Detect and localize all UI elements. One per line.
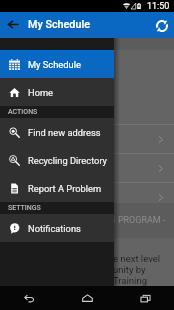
button[interactable]: [0, 125, 174, 153]
button[interactable]: [0, 154, 174, 182]
button[interactable]: Back: [0, 286, 58, 310]
staticText: SETTINGS: [8, 204, 41, 212]
staticText: ACTIONS: [8, 108, 38, 116]
button[interactable]: Back: [0, 11, 26, 37]
staticText: TRAINING PROGRAM -: [75, 215, 166, 226]
staticText: My Schedule: [28, 59, 81, 70]
staticText: Report A Problem: [28, 183, 102, 194]
button[interactable]: Report A Problem: [0, 174, 114, 202]
button[interactable]: Recent apps: [116, 286, 174, 310]
staticText: Recycling Directory: [28, 155, 108, 166]
staticText: Notifications: [28, 223, 81, 234]
button[interactable]: Recycling Directory: [0, 146, 114, 174]
staticText: Find new address: [28, 127, 101, 138]
button[interactable]: My Schedule: [0, 50, 114, 78]
button[interactable]: Find new address: [0, 118, 114, 146]
button[interactable]: Home: [58, 286, 116, 310]
staticText: Home: [28, 87, 54, 98]
button[interactable]: [0, 183, 174, 203]
staticText: e next level unity by Training: [113, 253, 161, 286]
button[interactable]: Notifications: [0, 214, 114, 242]
staticText: My Schedule: [28, 18, 90, 31]
button[interactable]: Refresh: [149, 13, 174, 39]
button[interactable]: Home: [0, 78, 114, 106]
staticText: 11:50: [147, 1, 170, 12]
